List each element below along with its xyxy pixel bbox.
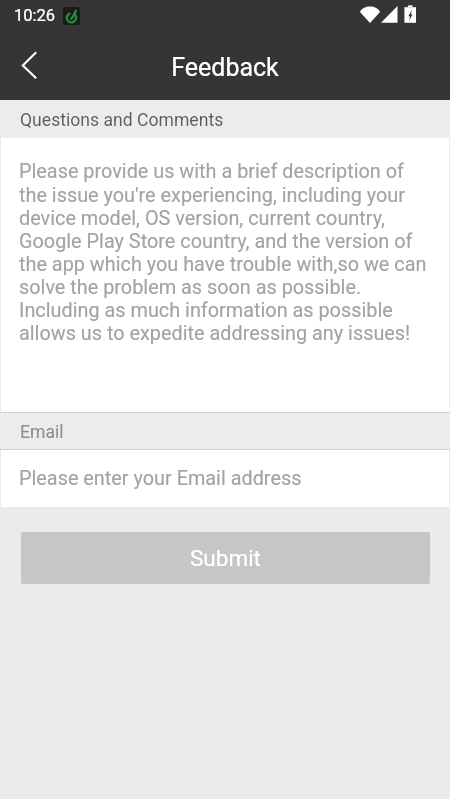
- staticText: 10:26: [14, 6, 56, 25]
- button[interactable]: Submit: [21, 532, 430, 584]
- staticText: Email: [20, 422, 64, 443]
- button[interactable]: Please provide us with a brief descripti…: [1, 138, 449, 412]
- staticText: Please enter your Email address: [19, 467, 302, 490]
- staticText: Feedback: [171, 53, 279, 82]
- staticText: Submit: [190, 545, 261, 571]
- staticText: Please provide us with a brief descripti…: [19, 160, 430, 344]
- staticText: Questions and Comments: [20, 110, 224, 131]
- button[interactable]: Back: [0, 35, 52, 100]
- button[interactable]: Please enter your Email address: [1, 450, 449, 507]
